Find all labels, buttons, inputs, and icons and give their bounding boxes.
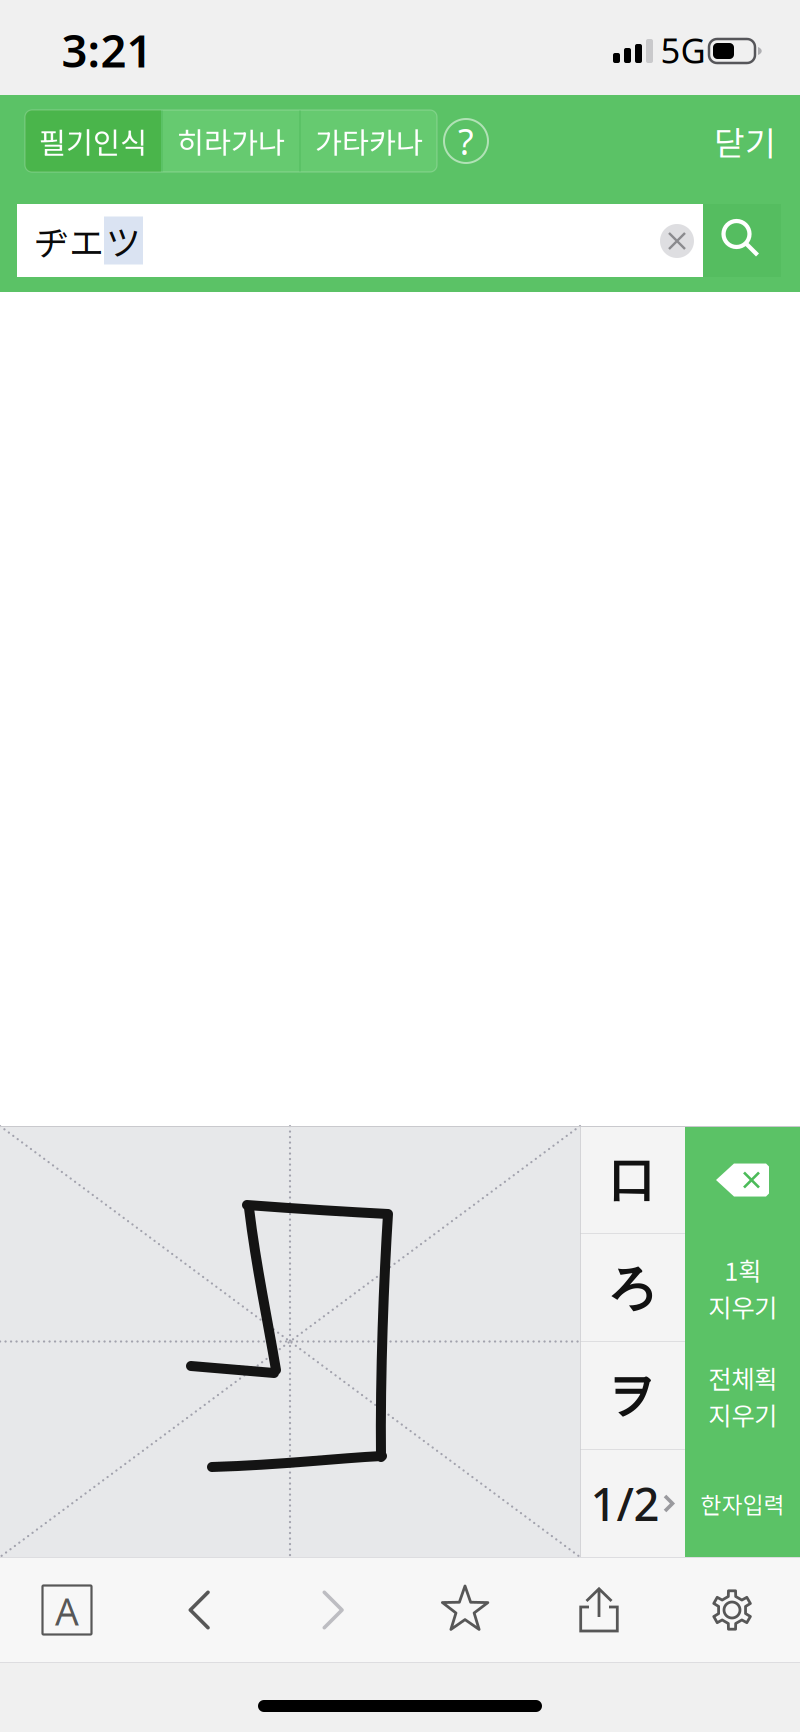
button[interactable]: 가타카나 xyxy=(301,110,437,172)
staticText: ツ xyxy=(106,215,141,266)
button[interactable]: Font size xyxy=(19,1562,115,1658)
button[interactable]: 口 xyxy=(580,1126,685,1234)
staticText: ろ xyxy=(607,1257,657,1319)
staticText: 가타카나 xyxy=(315,120,423,162)
button[interactable]: ろ xyxy=(580,1234,685,1342)
button[interactable]: 한자입력 xyxy=(685,1450,800,1557)
staticText: 5G xyxy=(660,27,705,73)
button[interactable]: Share xyxy=(551,1562,647,1658)
button[interactable]: 전체획 지우기 xyxy=(685,1342,800,1450)
staticText: ? xyxy=(458,117,474,165)
button[interactable]: 1획 지우기 xyxy=(685,1234,800,1342)
button[interactable]: 1/2 xyxy=(580,1450,685,1557)
staticText: 한자입력 xyxy=(700,1487,784,1520)
staticText: 3:21 xyxy=(61,20,152,80)
button[interactable]: Delete xyxy=(685,1126,800,1234)
staticText: ヲ xyxy=(608,1366,657,1426)
staticText: 1획 지우기 xyxy=(708,1251,777,1325)
staticText: 1/2 xyxy=(590,1473,659,1534)
button[interactable]: Favorites xyxy=(417,1562,513,1658)
staticText: 필기인식 xyxy=(39,120,147,162)
button[interactable]: Back xyxy=(151,1562,247,1658)
button[interactable]: Search xyxy=(703,204,781,277)
staticText: 닫기 xyxy=(714,117,776,165)
button[interactable]: Help xyxy=(434,109,498,173)
staticText: 전체획 지우기 xyxy=(708,1359,777,1433)
staticText: 히라가나 xyxy=(177,120,285,162)
button[interactable]: 필기인식 xyxy=(25,110,161,172)
button[interactable]: ヲ xyxy=(580,1342,685,1450)
staticText: 口 xyxy=(609,1151,656,1209)
button[interactable]: Settings xyxy=(684,1562,780,1658)
button[interactable]: Forward xyxy=(285,1562,381,1658)
staticText: A xyxy=(55,1586,79,1636)
button[interactable]: 히라가나 xyxy=(163,110,299,172)
button[interactable]: 닫기 xyxy=(690,105,800,177)
staticText: ヂエ xyxy=(34,215,104,266)
button[interactable]: Clear text xyxy=(646,210,708,272)
